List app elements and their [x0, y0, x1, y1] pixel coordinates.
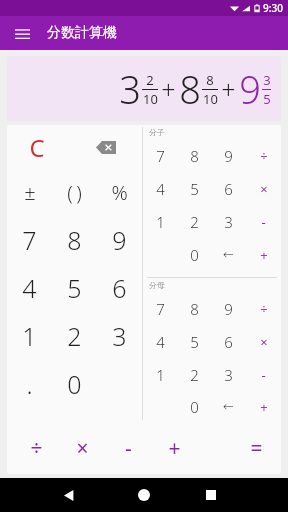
button[interactable]: Back: [52, 478, 86, 512]
button[interactable]: ×: [246, 172, 281, 205]
staticText: ÷: [260, 300, 268, 318]
button[interactable]: Recent apps: [194, 478, 228, 512]
button[interactable]: ±: [7, 169, 52, 216]
staticText: 9: [224, 146, 233, 166]
button[interactable]: 4: [7, 264, 52, 312]
staticText: 分数計算機: [47, 24, 117, 42]
staticText: ×: [260, 180, 268, 198]
button[interactable]: 1: [7, 312, 52, 360]
staticText: 2: [67, 319, 82, 353]
button[interactable]: 9: [211, 139, 246, 172]
button[interactable]: +: [246, 391, 281, 422]
button[interactable]: 5: [177, 172, 211, 205]
staticText: 1: [22, 319, 37, 353]
staticText: 1: [156, 365, 165, 385]
staticText: -: [125, 434, 132, 463]
button[interactable]: -: [246, 205, 281, 238]
staticText: 5: [190, 179, 199, 199]
button[interactable]: 6: [211, 172, 246, 205]
staticText: ÷: [260, 147, 268, 165]
button[interactable]: 9: [97, 216, 142, 264]
button[interactable]: ←: [211, 238, 246, 271]
staticText: 10: [143, 90, 158, 108]
button[interactable]: 5: [177, 325, 211, 358]
button[interactable]: 6: [211, 325, 246, 358]
staticText: 9: [239, 63, 261, 115]
button[interactable]: 3: [7, 56, 281, 121]
button[interactable]: =: [231, 422, 281, 474]
button[interactable]: 8: [177, 139, 211, 172]
staticText: 9: [224, 299, 233, 319]
button[interactable]: 0: [177, 391, 211, 422]
staticText: 4: [22, 271, 37, 305]
staticText: 6: [224, 179, 233, 199]
button[interactable]: Menu: [10, 21, 34, 45]
button[interactable]: 2: [177, 358, 211, 391]
staticText: 7: [22, 223, 37, 257]
staticText: 5: [67, 271, 82, 305]
staticText: 7: [156, 146, 165, 166]
button[interactable]: +: [246, 238, 281, 271]
staticText: +: [260, 246, 268, 264]
button[interactable]: 7: [143, 139, 177, 172]
button[interactable]: ÷: [246, 139, 281, 172]
button[interactable]: -: [106, 422, 150, 474]
staticText: ( ): [67, 179, 82, 206]
button[interactable]: 3: [211, 205, 246, 238]
staticText: 1: [156, 212, 165, 232]
staticText: ×: [76, 434, 89, 463]
button[interactable]: .: [7, 360, 52, 408]
staticText: 5: [190, 332, 199, 352]
button[interactable]: +: [152, 422, 196, 474]
staticText: +: [221, 72, 236, 106]
staticText: 6: [112, 271, 127, 305]
button[interactable]: 5: [52, 264, 97, 312]
staticText: 2: [190, 365, 199, 385]
button[interactable]: ×: [60, 422, 104, 474]
button[interactable]: 4: [143, 325, 177, 358]
staticText: 0: [190, 245, 199, 265]
button[interactable]: 7: [7, 216, 52, 264]
staticText: 4: [156, 179, 165, 199]
button[interactable]: ( ): [52, 169, 97, 216]
staticText: 8: [190, 146, 199, 166]
button[interactable]: ×: [246, 325, 281, 358]
staticText: %: [111, 179, 128, 206]
staticText: 5: [263, 90, 271, 108]
staticText: 8: [206, 71, 214, 89]
staticText: ÷: [30, 434, 43, 463]
button[interactable]: 3: [211, 358, 246, 391]
staticText: 8: [179, 63, 201, 115]
button[interactable]: ÷: [246, 292, 281, 325]
button[interactable]: 0: [52, 360, 97, 408]
button[interactable]: 0: [177, 238, 211, 271]
button[interactable]: 2: [177, 205, 211, 238]
button[interactable]: -: [246, 358, 281, 391]
button[interactable]: 1: [143, 358, 177, 391]
button[interactable]: 8: [52, 216, 97, 264]
staticText: 0: [67, 367, 82, 401]
button[interactable]: 1: [143, 205, 177, 238]
button[interactable]: Backspace: [85, 125, 127, 169]
staticText: 2: [190, 212, 199, 232]
button[interactable]: 6: [97, 264, 142, 312]
button[interactable]: 7: [143, 292, 177, 325]
button[interactable]: Home: [127, 478, 161, 512]
button[interactable]: 2: [52, 312, 97, 360]
button[interactable]: 4: [143, 172, 177, 205]
button[interactable]: 8: [177, 292, 211, 325]
staticText: +: [168, 434, 181, 463]
button[interactable]: 3: [97, 312, 142, 360]
button[interactable]: ÷: [14, 422, 58, 474]
staticText: 6: [224, 332, 233, 352]
button[interactable]: ←: [211, 391, 246, 422]
button[interactable]: 9: [211, 292, 246, 325]
staticText: .: [26, 367, 33, 401]
button[interactable]: C: [17, 125, 57, 169]
button[interactable]: %: [97, 169, 142, 216]
staticText: 2: [146, 71, 154, 89]
staticText: ±: [24, 179, 36, 206]
